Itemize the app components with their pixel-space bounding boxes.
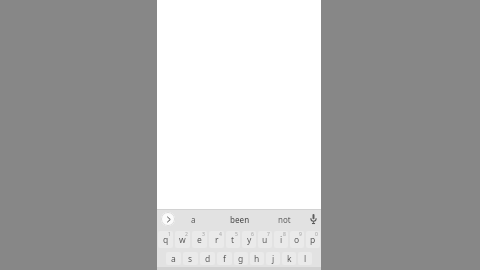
staticText: e [197, 234, 202, 246]
staticText: k [287, 253, 292, 265]
staticText: a [171, 253, 176, 265]
button[interactable]: not [273, 214, 295, 225]
button[interactable]: k [282, 252, 296, 265]
staticText: 2 [185, 231, 188, 238]
staticText: not [278, 214, 291, 225]
staticText: w [179, 234, 186, 246]
button[interactable]: s [183, 252, 198, 265]
staticText: d [205, 253, 211, 265]
staticText: been [230, 214, 250, 225]
button[interactable]: q [158, 231, 173, 248]
button[interactable]: i [274, 231, 288, 248]
button[interactable]: u [258, 231, 272, 248]
staticText: s [188, 253, 193, 265]
staticText: r [215, 234, 219, 246]
button[interactable] [161, 212, 175, 226]
button[interactable] [310, 214, 317, 224]
staticText: y [247, 234, 252, 246]
staticText: f [223, 253, 226, 265]
staticText: 9 [299, 231, 302, 238]
button[interactable]: t [226, 231, 240, 248]
staticText: j [272, 253, 275, 265]
staticText: a [191, 214, 196, 225]
staticText: p [310, 234, 316, 246]
staticText: 8 [283, 231, 286, 238]
button[interactable]: h [250, 252, 264, 265]
button[interactable]: g [234, 252, 248, 265]
button[interactable]: a [166, 252, 181, 265]
button[interactable]: e [192, 231, 207, 248]
staticText: h [254, 253, 260, 265]
button[interactable]: l [298, 252, 312, 265]
staticText: 4 [219, 231, 222, 238]
staticText: 6 [251, 231, 254, 238]
staticText: q [163, 234, 169, 246]
button[interactable]: f [217, 252, 232, 265]
staticText: i [280, 234, 283, 246]
staticText: o [294, 234, 300, 246]
button[interactable]: o [290, 231, 304, 248]
staticText: g [238, 253, 244, 265]
staticText: 0 [315, 231, 318, 238]
staticText: 5 [235, 231, 238, 238]
staticText: l [304, 253, 307, 265]
button[interactable]: a [183, 214, 203, 225]
staticText: t [231, 234, 235, 246]
staticText: u [262, 234, 268, 246]
button[interactable]: j [266, 252, 280, 265]
button[interactable]: r [209, 231, 224, 248]
button[interactable]: y [242, 231, 256, 248]
staticText: 3 [202, 231, 205, 238]
button[interactable]: p [306, 231, 320, 248]
staticText: 7 [267, 231, 270, 238]
button[interactable]: w [175, 231, 190, 248]
staticText: 1 [168, 231, 171, 238]
button[interactable]: d [200, 252, 215, 265]
button[interactable]: been [225, 214, 255, 225]
